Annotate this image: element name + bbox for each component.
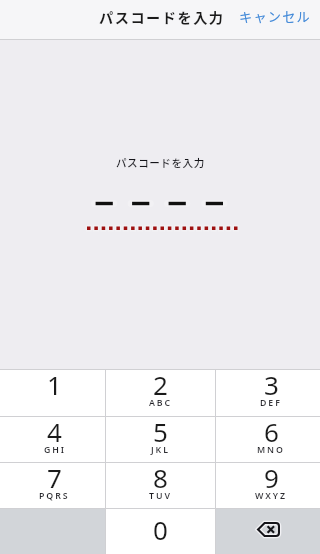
button[interactable]: 7 — [0, 463, 105, 508]
button[interactable]: 3 — [216, 370, 320, 416]
button[interactable]: 5 — [106, 417, 215, 462]
staticText: 9 — [264, 460, 279, 495]
staticText: パスコードを入力 — [116, 155, 205, 170]
staticText: 3 — [264, 367, 279, 402]
staticText: WXYZ — [255, 490, 287, 502]
staticText: 7 — [47, 460, 62, 495]
staticText: PQRS — [39, 490, 70, 502]
staticText: TUV — [149, 490, 172, 502]
staticText: キャンセル — [239, 7, 311, 26]
staticText: JKL — [151, 444, 170, 456]
button[interactable]: 9 — [216, 463, 320, 508]
staticText: 8 — [153, 460, 168, 495]
button[interactable]: Delete — [216, 509, 320, 554]
staticText: MNO — [257, 444, 285, 456]
button[interactable]: 0 — [106, 509, 215, 554]
staticText: 2 — [153, 367, 168, 402]
staticText: DEF — [260, 397, 282, 409]
staticText: 6 — [264, 414, 279, 449]
staticText: ABC — [149, 397, 173, 409]
button[interactable]: キャンセル — [233, 3, 320, 30]
staticText: 1 — [47, 367, 62, 402]
button[interactable]: 6 — [216, 417, 320, 462]
button[interactable]: 2 — [106, 370, 215, 416]
staticText: 4 — [47, 414, 62, 449]
staticText: 0 — [153, 512, 168, 547]
button[interactable]: 8 — [106, 463, 215, 508]
button[interactable]: 1 — [0, 370, 105, 416]
staticText: 5 — [153, 414, 168, 449]
staticText: GHI — [44, 444, 66, 456]
button[interactable]: 4 — [0, 417, 105, 462]
staticText: パスコードを入力 — [99, 7, 225, 28]
